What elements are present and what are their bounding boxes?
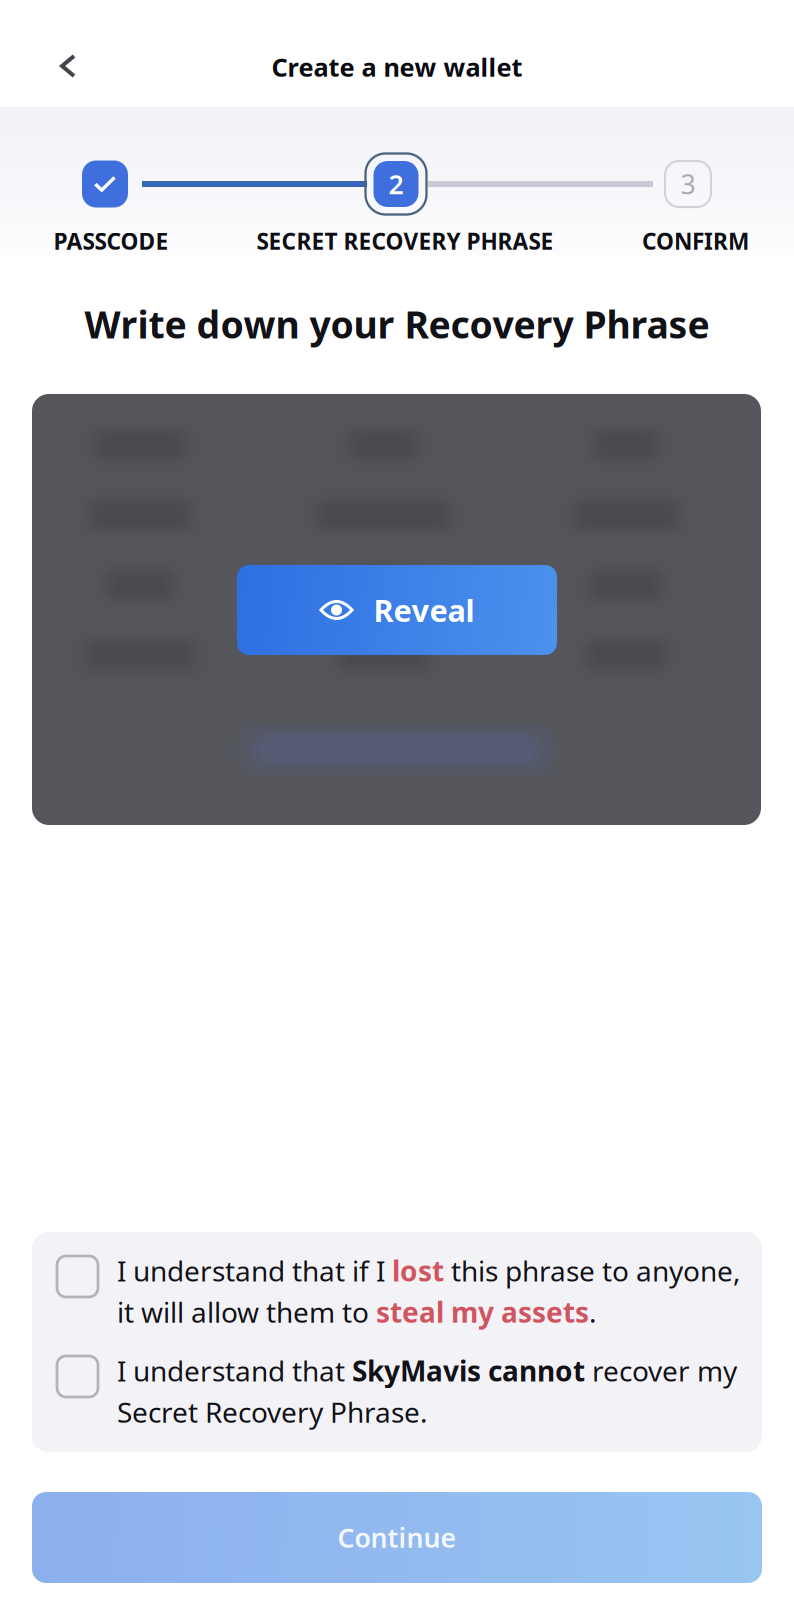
staticText: Create a new wallet xyxy=(271,50,522,84)
button[interactable]: Back xyxy=(30,28,106,104)
staticText: Reveal xyxy=(373,590,474,630)
button[interactable]: I understand that if I lost this phrase … xyxy=(32,1246,762,1342)
staticText: SECRET RECOVERY PHRASE xyxy=(256,226,553,256)
staticText: PASSCODE xyxy=(53,226,168,256)
staticText: I understand that if I lost this phrase … xyxy=(117,1252,741,1330)
staticText: 3 xyxy=(680,166,695,202)
staticText: Write down your Recovery Phrase xyxy=(84,299,709,349)
staticText: Continue xyxy=(337,1520,456,1555)
staticText: 2 xyxy=(388,166,403,202)
button[interactable]: I understand that SkyMavis cannot recove… xyxy=(32,1346,762,1442)
staticText: CONFIRM xyxy=(642,226,749,256)
staticText: I understand that SkyMavis cannot recove… xyxy=(117,1352,737,1430)
button[interactable]: Reveal xyxy=(237,565,557,655)
button[interactable]: Continue xyxy=(32,1492,762,1583)
